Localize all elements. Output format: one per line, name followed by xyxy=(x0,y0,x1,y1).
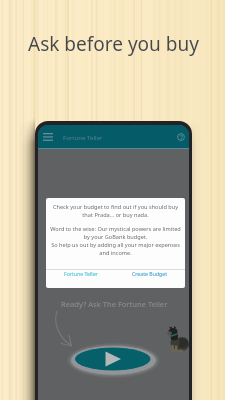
staticText: Check your budget to find out if you sho… xyxy=(50,203,181,218)
staticText: Create Budget xyxy=(132,270,168,277)
button[interactable]: Menu xyxy=(41,130,55,144)
staticText: Ask before you buy xyxy=(28,31,199,57)
staticText: Fortune Teller xyxy=(64,270,98,277)
staticText: Fortune Teller xyxy=(63,133,103,141)
staticText: So help us out by adding all your major … xyxy=(50,241,181,256)
staticText: Ready? Ask The Fortune Teller xyxy=(61,299,168,309)
staticText: Word to the wise: Our mystical powers ar… xyxy=(50,225,181,240)
button[interactable]: Create Budget xyxy=(115,266,185,280)
button[interactable]: Help xyxy=(174,130,188,144)
button[interactable]: Fortune Teller xyxy=(46,266,115,280)
